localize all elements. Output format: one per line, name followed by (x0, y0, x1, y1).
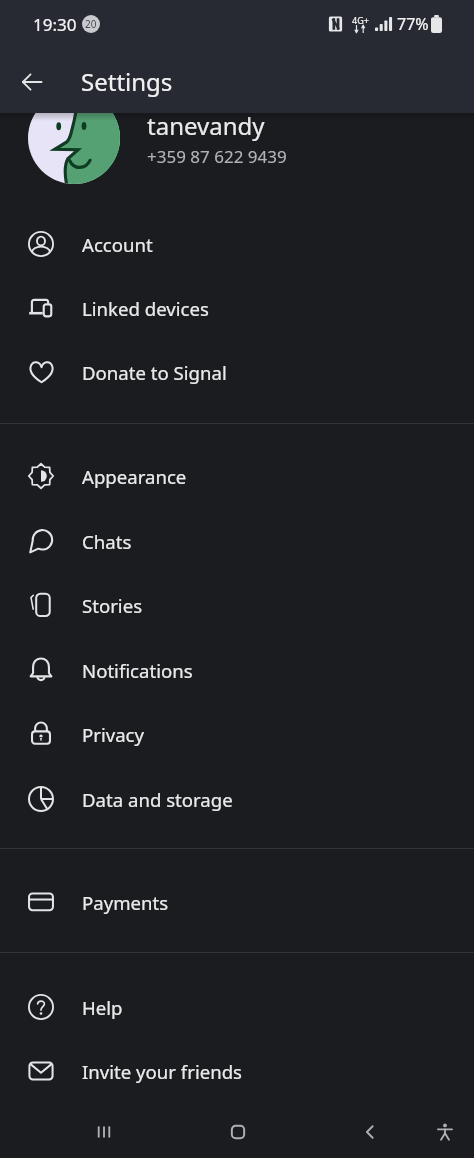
button[interactable]: Linked devices (0, 276, 474, 340)
button[interactable]: Help (0, 975, 474, 1039)
staticText: Payments (82, 890, 169, 915)
button[interactable]: tanevandy (0, 113, 474, 212)
staticText: +359 87 622 9439 (147, 145, 287, 168)
staticText: 19:30 (33, 13, 77, 36)
button[interactable]: Payments (0, 870, 474, 934)
button[interactable]: Donate to Signal (0, 340, 474, 404)
staticText: Help (82, 995, 123, 1020)
staticText: Settings (81, 65, 173, 98)
button[interactable]: Data and storage (0, 767, 474, 831)
button[interactable]: Back (348, 1110, 392, 1154)
staticText: 77% (397, 13, 429, 35)
button[interactable]: Back (12, 62, 52, 102)
button[interactable]: Chats (0, 509, 474, 573)
staticText: 20 (85, 17, 97, 31)
button[interactable]: Account (0, 212, 474, 276)
staticText: Data and storage (82, 787, 233, 812)
staticText: Notifications (82, 658, 193, 683)
staticText: Invite your friends (82, 1059, 242, 1084)
staticText: tanevandy (147, 109, 265, 142)
staticText: Donate to Signal (82, 360, 227, 385)
staticText: Stories (82, 593, 143, 618)
button[interactable]: Invite your friends (0, 1039, 474, 1103)
button[interactable]: Appearance (0, 444, 474, 508)
staticText: 4G+ (352, 14, 369, 26)
staticText: Chats (82, 529, 132, 554)
staticText: Account (82, 232, 153, 257)
staticText: Privacy (82, 722, 145, 747)
button[interactable]: Privacy (0, 702, 474, 766)
button[interactable]: Notifications (0, 638, 474, 702)
button[interactable]: Stories (0, 573, 474, 637)
button[interactable]: Accessibility (423, 1110, 467, 1154)
button[interactable]: Recents (82, 1110, 126, 1154)
staticText: Linked devices (82, 296, 209, 321)
staticText: Appearance (82, 464, 187, 489)
button[interactable]: Home (216, 1110, 260, 1154)
